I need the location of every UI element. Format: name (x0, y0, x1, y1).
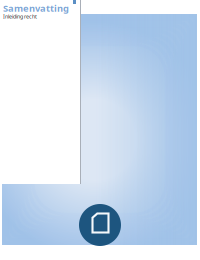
staticText: Inleiding recht (3, 13, 37, 20)
button[interactable]: Open document (79, 204, 121, 246)
staticText: Samenvatting (3, 2, 69, 14)
